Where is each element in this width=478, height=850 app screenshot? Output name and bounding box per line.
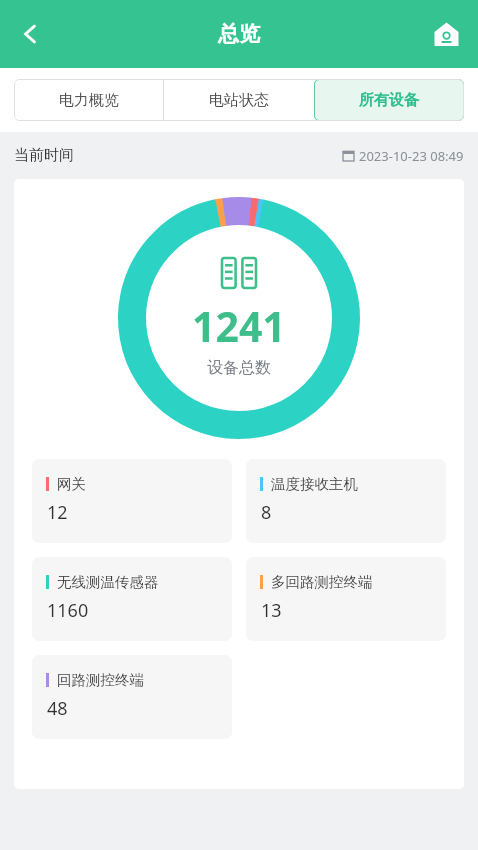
staticText: 8 — [261, 500, 272, 525]
staticText: 回路测控终端 — [57, 671, 144, 689]
staticText: 无线测温传感器 — [57, 573, 159, 591]
button[interactable]: Home — [424, 12, 468, 56]
staticText: 1160 — [47, 598, 89, 623]
staticText: 12 — [47, 500, 68, 525]
staticText: 13 — [261, 598, 282, 623]
staticText: 网关 — [57, 475, 86, 493]
staticText: 温度接收主机 — [271, 475, 358, 493]
button[interactable]: 无线测温传感器 — [32, 557, 232, 641]
button[interactable]: 网关 — [32, 459, 232, 543]
staticText: 总览 — [218, 21, 260, 47]
button[interactable]: 电站状态 — [164, 79, 314, 121]
staticText: 当前时间 — [14, 146, 74, 165]
button[interactable]: 多回路测控终端 — [246, 557, 446, 641]
staticText: 电站状态 — [209, 91, 269, 110]
staticText: 1241 — [192, 298, 286, 354]
staticText: 多回路测控终端 — [271, 573, 373, 591]
staticText: 所有设备 — [359, 91, 419, 110]
button[interactable]: 温度接收主机 — [246, 459, 446, 543]
staticText: 48 — [47, 696, 68, 721]
staticText: 电力概览 — [59, 91, 119, 110]
button[interactable]: 所有设备 — [314, 79, 464, 121]
button[interactable]: Back — [6, 10, 54, 58]
button[interactable]: 电力概览 — [14, 79, 163, 121]
staticText: 2023-10-23 08:49 — [359, 147, 464, 165]
button[interactable]: 回路测控终端 — [32, 655, 232, 739]
staticText: 设备总数 — [207, 358, 271, 378]
